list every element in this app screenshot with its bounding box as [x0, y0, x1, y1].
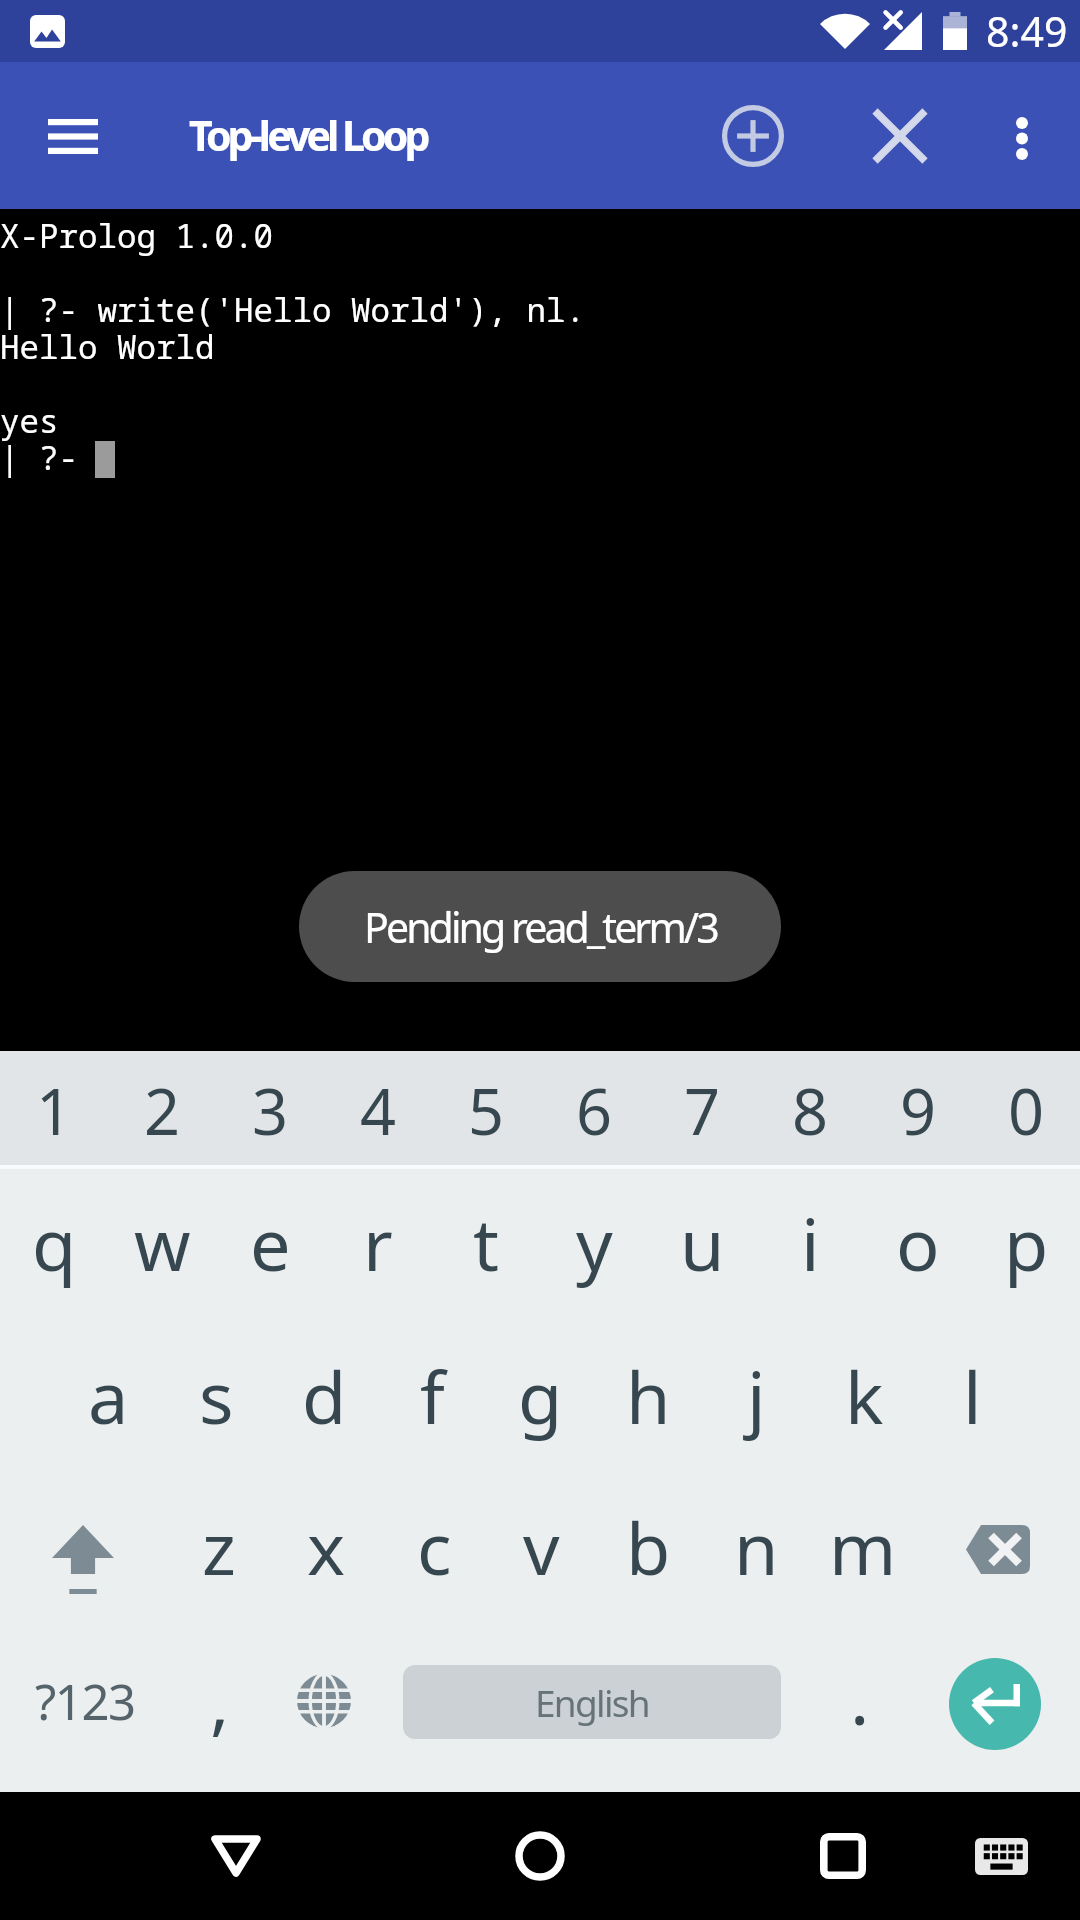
staticText: 1 [36, 1068, 73, 1154]
staticText: Pending read_term/3 [364, 899, 717, 955]
button[interactable]: t [432, 1169, 540, 1324]
button[interactable]: , [170, 1619, 270, 1792]
button[interactable]: z [165, 1469, 273, 1619]
staticText: p [1004, 1194, 1049, 1292]
staticText: z [202, 1498, 236, 1596]
button[interactable]: Recent apps [783, 1796, 903, 1916]
button[interactable]: b [594, 1469, 702, 1619]
staticText: j [747, 1347, 766, 1445]
button[interactable]: v [487, 1469, 595, 1619]
staticText: v [523, 1498, 560, 1596]
button[interactable]: l [918, 1319, 1026, 1469]
button[interactable]: f [378, 1319, 486, 1469]
button[interactable]: ?123 [0, 1619, 170, 1792]
staticText: s [199, 1347, 234, 1445]
button[interactable]: Close [850, 86, 950, 186]
button[interactable]: Back [176, 1796, 296, 1916]
staticText: 5 [468, 1068, 505, 1154]
staticText: t [473, 1194, 499, 1292]
button[interactable]: r [324, 1169, 432, 1324]
staticText: u [680, 1194, 725, 1292]
button[interactable]: n [702, 1469, 810, 1619]
button[interactable]: Delete [916, 1469, 1080, 1619]
button[interactable]: Navigation menu [23, 86, 123, 186]
button[interactable]: Change language [274, 1619, 374, 1792]
button[interactable]: 8 [756, 1051, 864, 1165]
button[interactable]: 6 [540, 1051, 648, 1165]
button[interactable]: Add [703, 86, 803, 186]
staticText: g [518, 1347, 563, 1445]
staticText: 8:49 [986, 3, 1068, 59]
staticText: a [88, 1347, 129, 1445]
button[interactable]: x [272, 1469, 380, 1619]
button[interactable]: q [0, 1169, 108, 1324]
staticText: English [535, 1677, 649, 1727]
staticText: b [626, 1498, 671, 1596]
button[interactable]: s [162, 1319, 270, 1469]
button[interactable]: Shift [0, 1469, 165, 1619]
button[interactable]: 3 [216, 1051, 324, 1165]
staticText: o [896, 1194, 940, 1292]
button[interactable]: 9 [864, 1051, 972, 1165]
staticText: r [363, 1194, 393, 1292]
staticText: , [210, 1651, 230, 1749]
staticText: 8 [792, 1068, 829, 1154]
staticText: 9 [900, 1068, 937, 1154]
staticText: ?123 [35, 1668, 135, 1735]
staticText: . [850, 1648, 870, 1746]
button[interactable]: k [810, 1319, 918, 1469]
button[interactable]: 7 [648, 1051, 756, 1165]
button[interactable]: i [756, 1169, 864, 1324]
staticText: e [250, 1194, 291, 1292]
button[interactable]: m [809, 1469, 917, 1619]
staticText: f [420, 1347, 445, 1445]
staticText: 4 [360, 1068, 397, 1154]
staticText: 3 [252, 1068, 289, 1154]
button[interactable]: c [380, 1469, 488, 1619]
button[interactable]: 4 [324, 1051, 432, 1165]
staticText: k [845, 1347, 884, 1445]
button[interactable]: h [594, 1319, 702, 1469]
button[interactable]: j [702, 1319, 810, 1469]
button[interactable]: 2 [108, 1051, 216, 1165]
button[interactable]: 5 [432, 1051, 540, 1165]
button[interactable]: Home [480, 1796, 600, 1916]
button[interactable]: 1 [0, 1051, 108, 1165]
button[interactable]: d [270, 1319, 378, 1469]
staticText: 7 [684, 1068, 721, 1154]
staticText: 0 [1008, 1068, 1045, 1154]
button[interactable]: p [972, 1169, 1080, 1324]
button[interactable]: w [108, 1169, 216, 1324]
button[interactable]: u [648, 1169, 756, 1324]
staticText: m [829, 1498, 897, 1596]
button[interactable]: g [486, 1319, 594, 1469]
button[interactable]: . [810, 1619, 910, 1792]
button[interactable]: a [54, 1319, 162, 1469]
staticText: h [626, 1347, 671, 1445]
staticText: y [576, 1194, 613, 1292]
staticText: x [307, 1498, 346, 1596]
staticText: 2 [144, 1068, 181, 1154]
staticText: n [734, 1498, 779, 1596]
button[interactable]: Switch keyboard [951, 1806, 1051, 1906]
button[interactable]: Prolog console output [0, 209, 1080, 1051]
staticText: i [801, 1194, 820, 1292]
staticText: d [302, 1347, 347, 1445]
button[interactable]: More options [977, 91, 1067, 181]
staticText: w [134, 1194, 191, 1292]
button[interactable]: e [216, 1169, 324, 1324]
button[interactable]: English [403, 1665, 781, 1739]
staticText: Top-level Loop [189, 107, 427, 163]
button[interactable]: Enter [949, 1658, 1041, 1750]
staticText: q [32, 1194, 77, 1292]
button[interactable]: 0 [972, 1051, 1080, 1165]
button[interactable]: o [864, 1169, 972, 1324]
staticText: 6 [576, 1068, 613, 1154]
staticText: c [417, 1498, 452, 1596]
staticText: X-Prolog 1.0.0 | ?- write('Hello World')… [0, 213, 585, 480]
staticText: l [963, 1347, 982, 1445]
button[interactable]: y [540, 1169, 648, 1324]
